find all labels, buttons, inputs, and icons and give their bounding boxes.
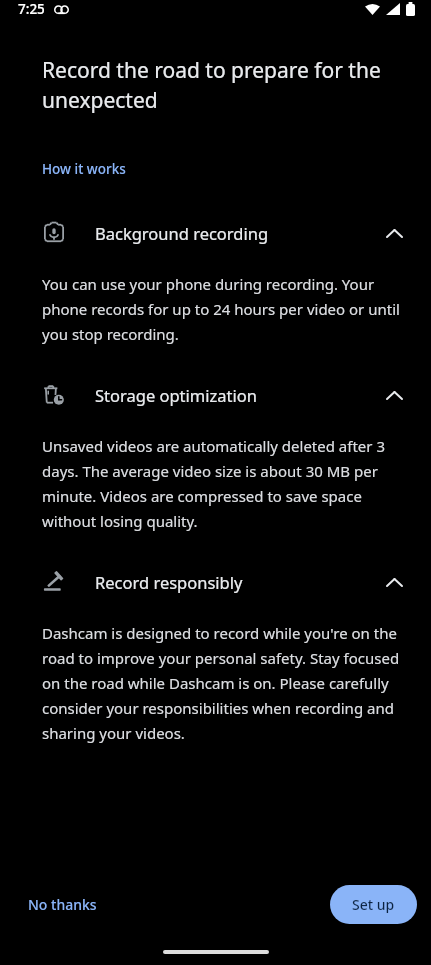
staticText: Set up	[352, 895, 395, 914]
staticText: Record responsibly	[95, 571, 373, 593]
button[interactable]: No thanks	[14, 885, 111, 924]
staticText: No thanks	[28, 895, 97, 914]
staticText: How it works	[42, 160, 126, 178]
staticText: 7:25	[18, 0, 45, 18]
staticText: Dashcam is designed to record while you'…	[42, 623, 401, 743]
button[interactable]: Record responsibly	[0, 563, 431, 601]
staticText: You can use your phone during recording.…	[42, 274, 401, 344]
button[interactable]: Background recording	[0, 214, 431, 252]
other: Collapse Background recording	[381, 220, 407, 246]
staticText: Background recording	[95, 222, 373, 244]
staticText: Unsaved videos are automatically deleted…	[42, 436, 401, 531]
staticText: Storage optimization	[95, 384, 373, 406]
staticText: Record the road to prepare for the unexp…	[42, 56, 385, 114]
button[interactable]: How it works	[42, 160, 126, 178]
other: Collapse Record responsibly	[381, 569, 407, 595]
other: Collapse Storage optimization	[381, 382, 407, 408]
button[interactable]: Set up	[330, 885, 417, 924]
button[interactable]: Storage optimization	[0, 376, 431, 414]
